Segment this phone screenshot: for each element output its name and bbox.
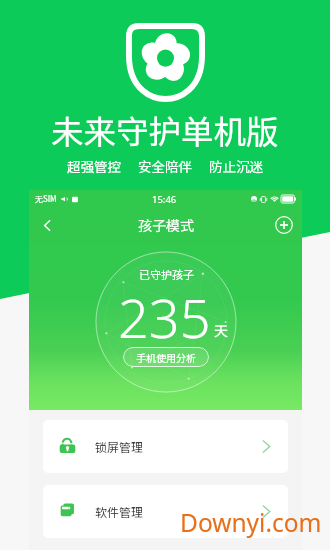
staticText: 超强管控 bbox=[67, 156, 121, 176]
staticText: 天 bbox=[214, 320, 228, 340]
button[interactable]: 软件管理 bbox=[43, 485, 288, 538]
staticText: 无SIM bbox=[35, 193, 57, 205]
staticText: 15:46 bbox=[152, 193, 177, 206]
staticText: 235 bbox=[118, 280, 211, 354]
staticText: 手机使用分析 bbox=[136, 350, 196, 364]
staticText: 已守护孩子 bbox=[139, 266, 194, 282]
button[interactable]: Back bbox=[29, 208, 65, 242]
button[interactable]: 锁屏管理 bbox=[43, 420, 288, 473]
button[interactable]: Add bbox=[266, 208, 302, 242]
staticText: 安全陪伴 bbox=[138, 156, 192, 176]
button[interactable]: 手机使用分析 bbox=[123, 347, 209, 367]
staticText: 未来守护单机版 bbox=[51, 106, 279, 153]
staticText: Downyi.com bbox=[180, 506, 322, 539]
staticText: 锁屏管理 bbox=[95, 438, 144, 455]
staticText: 软件管理 bbox=[95, 503, 144, 520]
staticText: 防止沉迷 bbox=[209, 156, 263, 176]
staticText: 孩子模式 bbox=[138, 215, 194, 235]
